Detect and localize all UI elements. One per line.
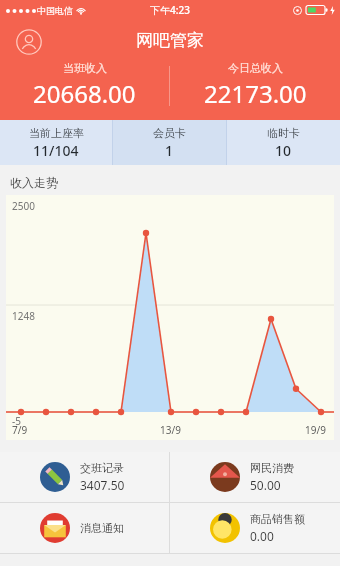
staticText: 50.00 [250,477,281,493]
staticText: 19/9 [225,423,326,437]
button[interactable]: 网民消费 [170,452,340,502]
staticText: 3407.50 [80,477,125,493]
button[interactable]: 临时卡 [227,120,340,165]
staticText: 10 [275,141,292,160]
staticText: 11/104 [33,141,79,160]
staticText: 当前上座率 [29,126,84,140]
staticText: 网民消费 [250,461,294,475]
button[interactable]: 会员卡 [113,120,226,165]
staticText: 商品销售额 [250,512,305,526]
button[interactable]: Profile [12,25,46,59]
staticText: 中国电信 [37,5,73,16]
button[interactable]: 交班记录 [0,452,169,502]
staticText: 13/9 [116,423,225,437]
staticText: 交班记录 [80,461,124,475]
staticText: 2500 [12,199,35,213]
button[interactable]: 消息通知 [0,503,169,553]
button[interactable]: 当前上座率 [0,120,112,165]
staticText: 今日总收入 [228,61,283,75]
staticText: 收入走势 [10,175,58,190]
staticText: 1248 [12,309,35,323]
staticText: -5 [12,414,21,428]
staticText: 消息通知 [80,521,124,535]
staticText: 20668.00 [33,77,136,110]
staticText: 当班收入 [63,61,107,75]
staticText: 网吧管家 [136,30,204,51]
button[interactable]: 商品销售额 [170,503,340,553]
staticText: 会员卡 [153,126,186,140]
staticText: 1 [165,141,174,160]
staticText: 临时卡 [267,126,300,140]
staticText: 下午4:23 [150,3,190,17]
staticText: 22173.00 [204,77,307,110]
staticText: 7/9 [12,423,116,437]
staticText: 0.00 [250,528,274,544]
